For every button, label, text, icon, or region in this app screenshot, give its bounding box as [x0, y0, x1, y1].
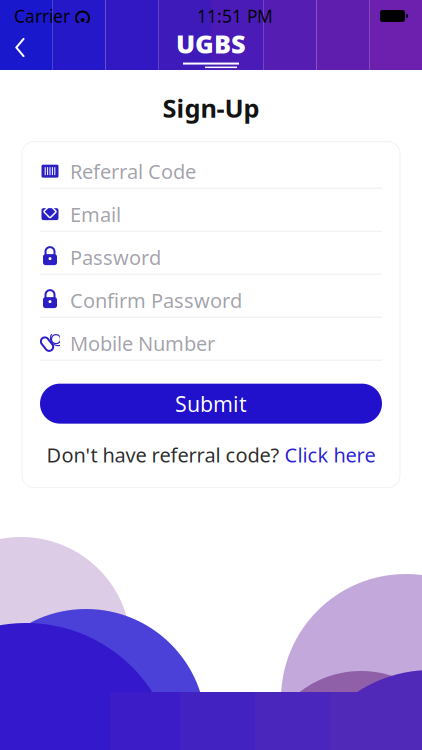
staticText: Click here	[284, 441, 375, 468]
staticText: Mobile Number	[70, 330, 215, 356]
staticText: 11:51 PM	[197, 4, 273, 27]
button[interactable]: Referral Code	[22, 155, 400, 189]
button[interactable]: Password	[22, 241, 400, 275]
staticText: Carrier	[14, 4, 70, 27]
staticText: UGBS	[176, 27, 246, 60]
button[interactable]: Mobile Number	[22, 327, 400, 361]
button[interactable]: Email	[22, 198, 400, 232]
button[interactable]: Back	[0, 27, 40, 67]
staticText: Confirm Password	[70, 287, 242, 313]
staticText: Submit	[175, 389, 247, 418]
button[interactable]: Submit	[40, 384, 382, 424]
staticText: Don't have referral code?	[46, 441, 279, 468]
button[interactable]: Confirm Password	[22, 284, 400, 318]
staticText: Email	[70, 201, 121, 227]
staticText: Referral Code	[70, 158, 196, 184]
button[interactable]: Don't have referral code?	[36, 439, 386, 471]
staticText: Password	[70, 244, 161, 270]
staticText: Sign-Up	[162, 91, 259, 125]
